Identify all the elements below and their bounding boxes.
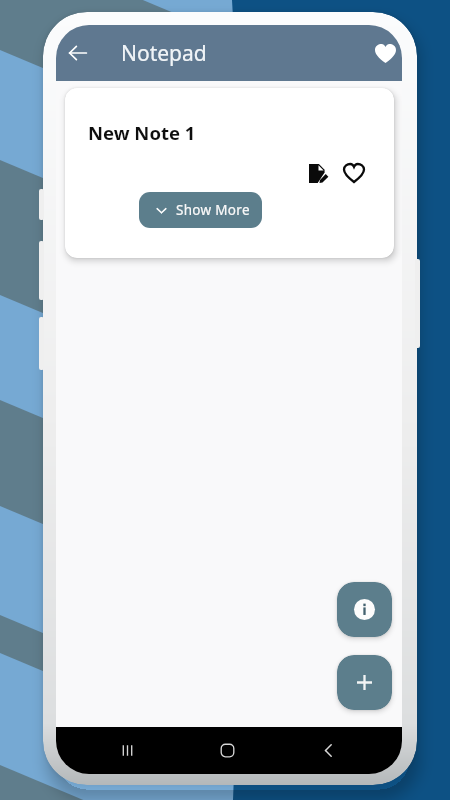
button[interactable]: Back	[312, 734, 344, 766]
button[interactable]: New Note 1	[65, 88, 394, 258]
staticText: Show More	[176, 201, 250, 219]
button[interactable]: Back	[62, 37, 94, 69]
button[interactable]: Favorite	[339, 158, 369, 188]
button[interactable]: Info	[337, 582, 392, 637]
button[interactable]: Recents	[111, 734, 143, 766]
button[interactable]: Show More	[139, 192, 262, 228]
button[interactable]: Edit note	[303, 158, 333, 188]
button[interactable]: Add note	[337, 655, 392, 710]
button[interactable]: Home	[211, 734, 243, 766]
button[interactable]: Favorites	[368, 36, 402, 70]
staticText: New Note 1	[88, 120, 196, 145]
staticText: Notepad	[121, 39, 207, 68]
